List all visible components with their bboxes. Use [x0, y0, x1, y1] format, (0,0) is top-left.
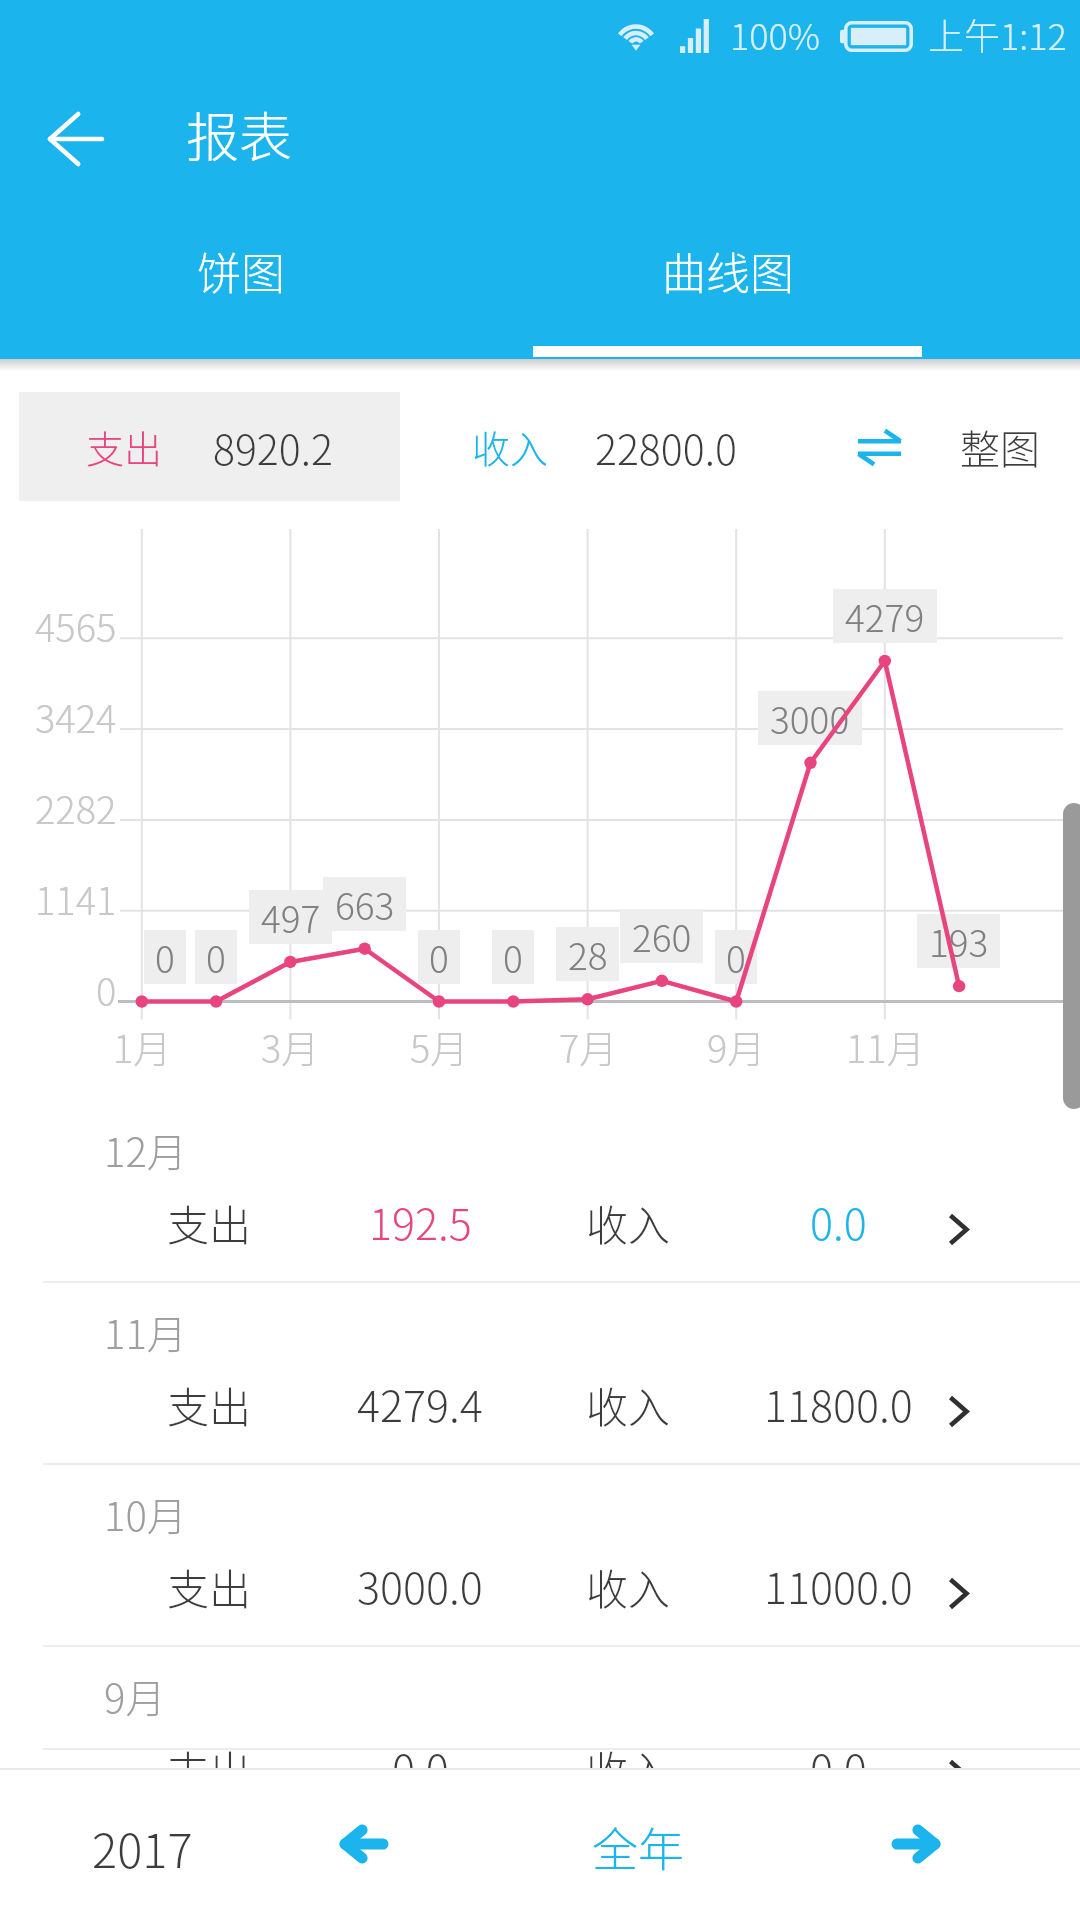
- button[interactable]: 12月: [0, 1101, 1080, 1283]
- staticText: 支出: [167, 1738, 252, 1798]
- button[interactable]: Swap expense and income: [840, 414, 918, 480]
- staticText: 3424: [35, 689, 117, 744]
- button[interactable]: 全年: [563, 1801, 713, 1891]
- staticText: 4279: [845, 589, 925, 643]
- staticText: 整图: [960, 418, 1040, 476]
- staticText: 100%: [730, 8, 821, 60]
- staticText: 0.0: [392, 1736, 449, 1796]
- staticText: 收入: [472, 419, 549, 474]
- staticText: 28: [568, 927, 608, 981]
- staticText: 0: [96, 962, 117, 1017]
- staticText: 饼图: [197, 239, 285, 303]
- staticText: 497: [261, 890, 321, 944]
- staticText: 支出: [167, 1374, 252, 1434]
- button[interactable]: Back: [40, 103, 112, 175]
- staticText: 192.5: [369, 1190, 472, 1250]
- staticText: 1月: [113, 1019, 172, 1073]
- button[interactable]: 饼图: [0, 197, 482, 344]
- button[interactable]: Open 11月 detail: [930, 1381, 986, 1441]
- button[interactable]: 支出: [19, 392, 400, 501]
- staticText: 收入: [586, 1374, 671, 1434]
- button[interactable]: 曲线图: [482, 197, 974, 344]
- staticText: 3000.0: [357, 1554, 483, 1614]
- staticText: 10月: [104, 1485, 187, 1543]
- staticText: 3月: [261, 1019, 320, 1073]
- button[interactable]: 收入: [472, 392, 737, 501]
- staticText: 3000: [770, 691, 850, 745]
- staticText: 9月: [707, 1019, 766, 1073]
- button[interactable]: 整图: [960, 392, 1040, 501]
- button[interactable]: 10月: [0, 1465, 1080, 1647]
- staticText: 收入: [586, 1192, 671, 1252]
- staticText: 11月: [104, 1303, 187, 1361]
- staticText: 支出: [167, 1556, 252, 1616]
- button[interactable]: Open 9月 detail: [930, 1745, 986, 1805]
- staticText: 2282: [35, 780, 117, 835]
- staticText: 9月: [104, 1667, 166, 1725]
- button[interactable]: 9月: [0, 1647, 1080, 1750]
- button[interactable]: 11月: [0, 1283, 1080, 1465]
- staticText: 4279.4: [357, 1372, 483, 1432]
- staticText: 193: [929, 914, 989, 968]
- staticText: 曲线图: [662, 239, 794, 303]
- staticText: 5月: [410, 1019, 469, 1073]
- staticText: 22800.0: [595, 417, 737, 476]
- staticText: 0.0: [810, 1736, 867, 1796]
- staticText: 报表: [186, 96, 292, 173]
- staticText: 4565: [35, 598, 117, 653]
- staticText: 0: [503, 930, 523, 984]
- button[interactable]: Open 10月 detail: [930, 1563, 986, 1623]
- staticText: 上午1:12: [928, 8, 1067, 60]
- staticText: 0.0: [810, 1190, 867, 1250]
- staticText: 1141: [35, 871, 117, 926]
- staticText: 2017: [92, 1813, 193, 1881]
- staticText: 7月: [559, 1019, 618, 1073]
- staticText: 全年: [592, 1813, 684, 1880]
- button[interactable]: Previous year: [318, 1799, 408, 1889]
- button[interactable]: Next year: [872, 1799, 962, 1889]
- staticText: 11月: [846, 1019, 925, 1073]
- staticText: 支出: [167, 1192, 252, 1252]
- button[interactable]: Open 12月 detail: [930, 1199, 986, 1259]
- staticText: 0: [155, 930, 175, 984]
- staticText: 12月: [104, 1121, 187, 1179]
- staticText: 0: [206, 930, 226, 984]
- staticText: 收入: [586, 1738, 671, 1798]
- staticText: 0: [726, 930, 746, 984]
- staticText: 11000.0: [764, 1554, 913, 1614]
- staticText: 663: [335, 877, 395, 931]
- staticText: 支出: [86, 419, 163, 474]
- staticText: 收入: [586, 1556, 671, 1616]
- staticText: 11800.0: [764, 1372, 913, 1432]
- staticText: 260: [632, 909, 692, 963]
- staticText: 8920.2: [213, 417, 333, 476]
- staticText: 0: [429, 930, 449, 984]
